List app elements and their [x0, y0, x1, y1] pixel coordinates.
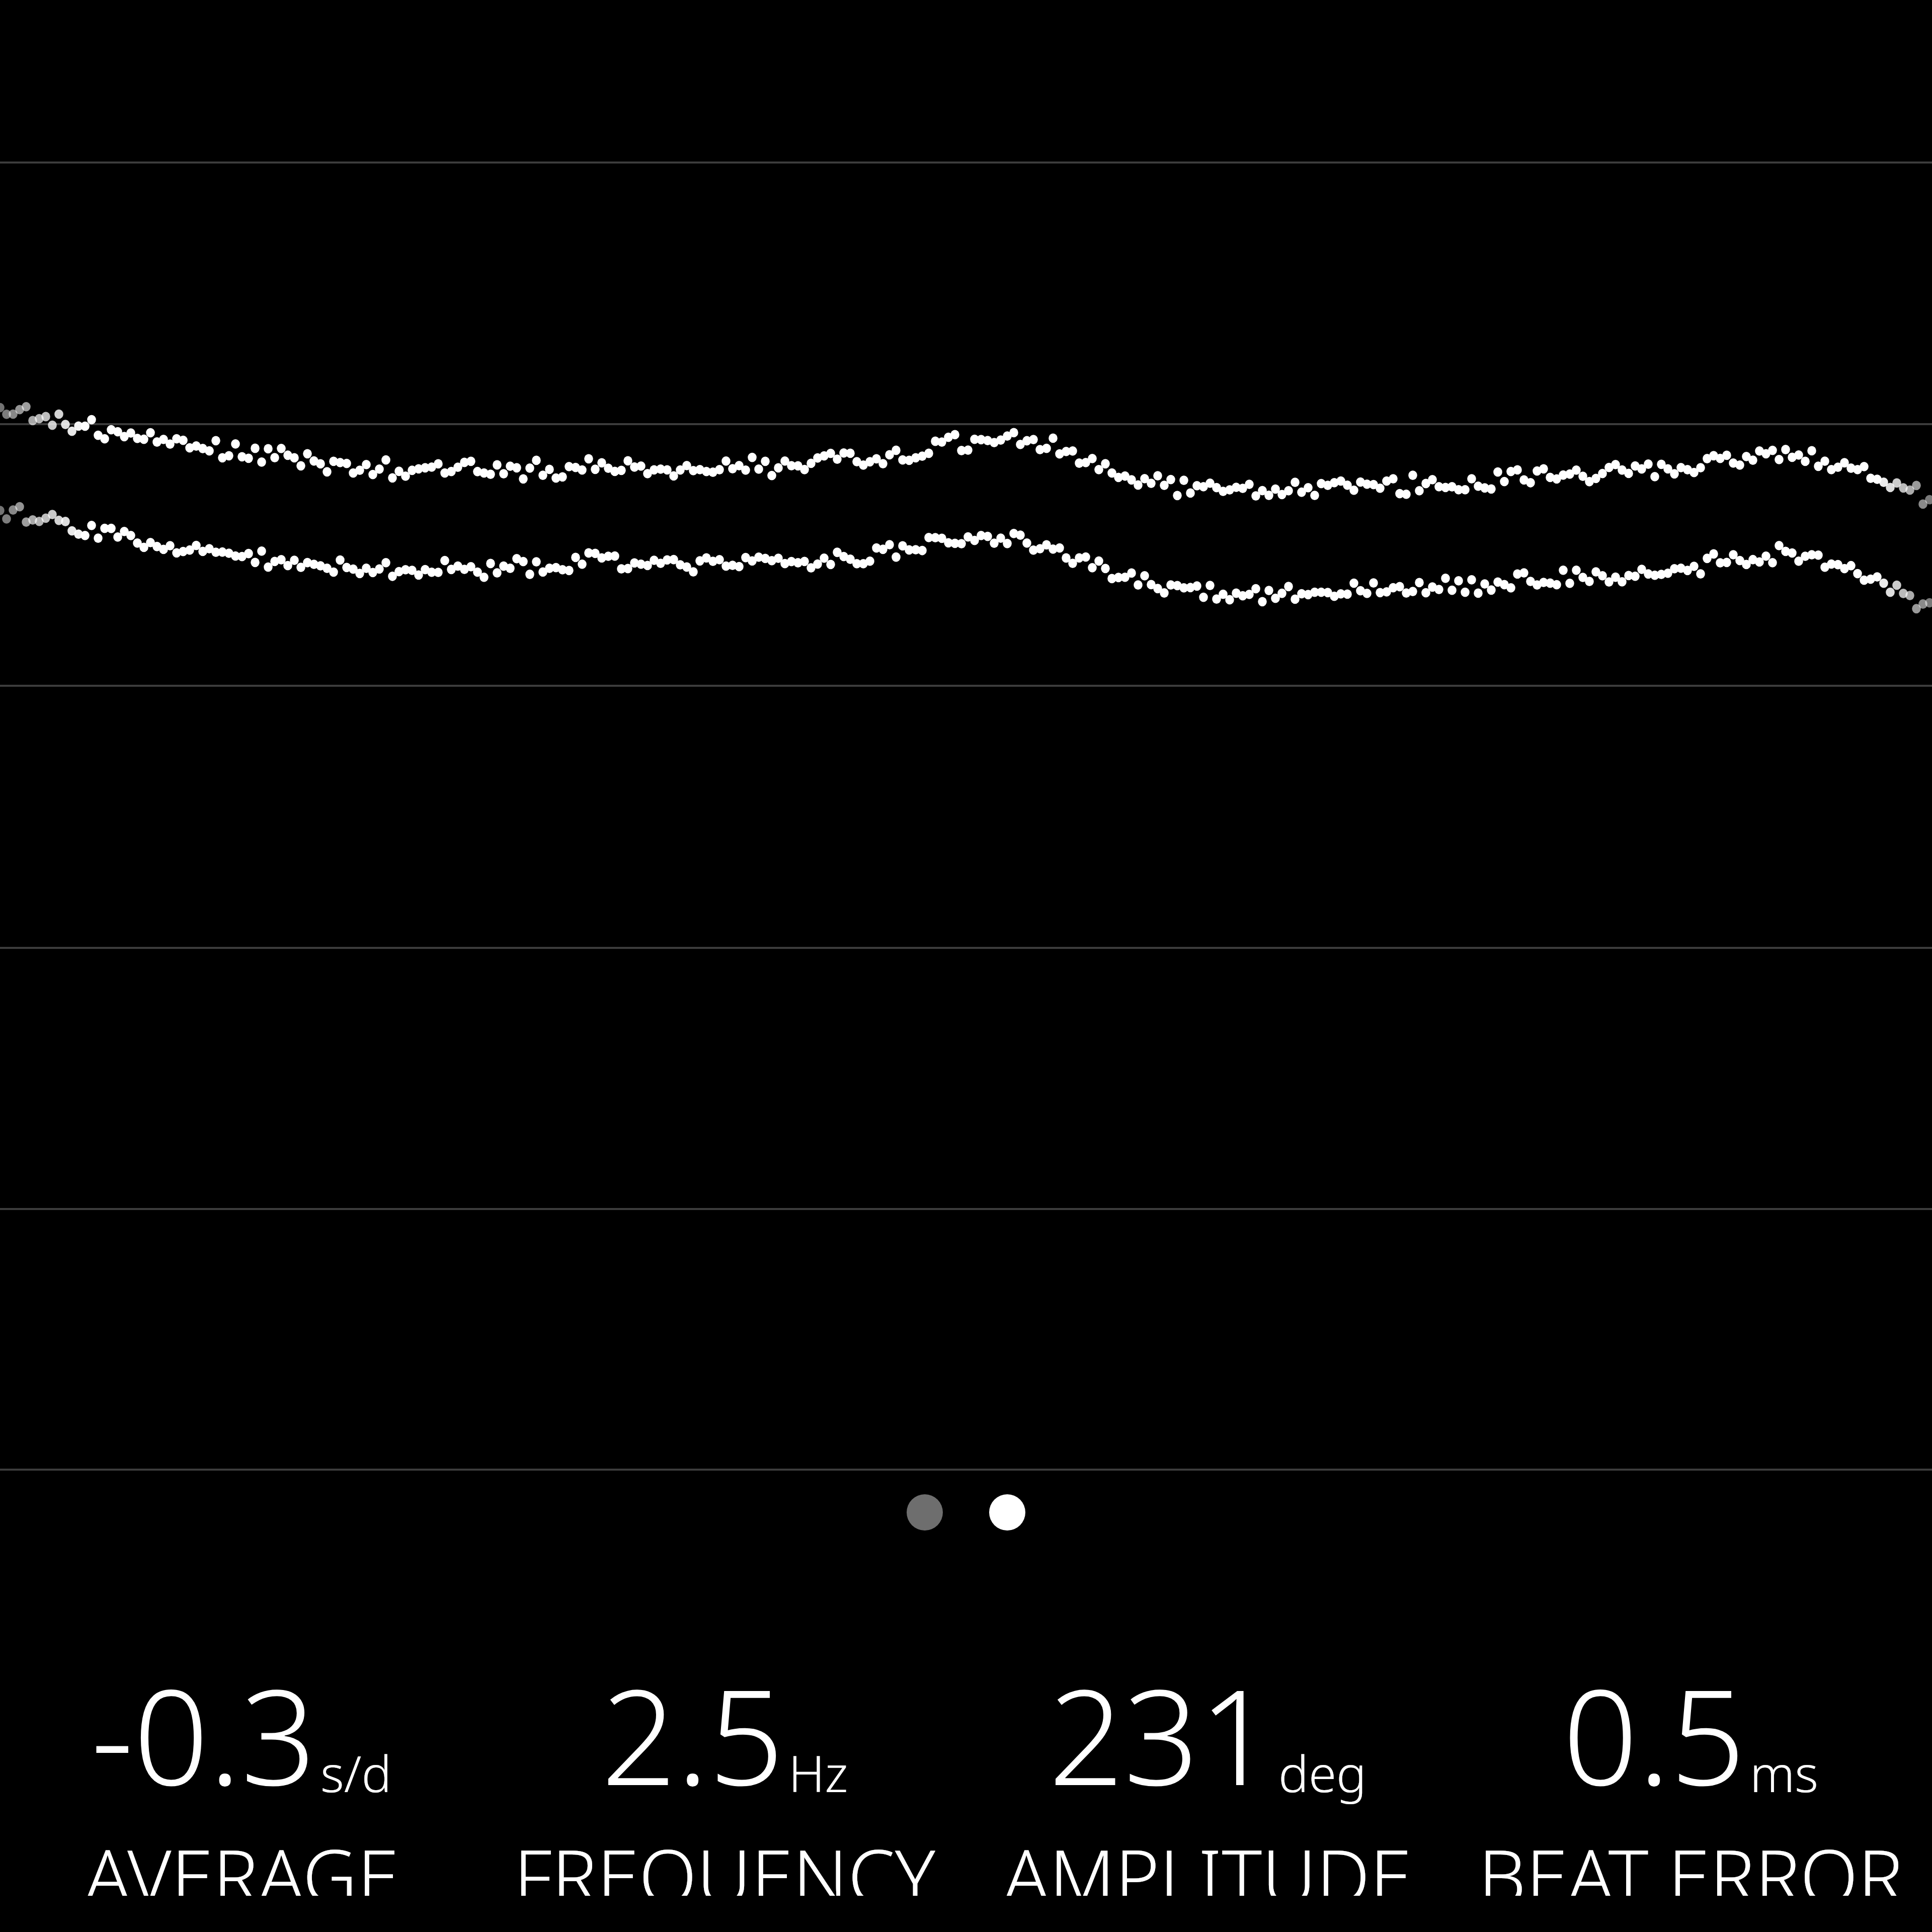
staticText: deg	[1278, 1738, 1366, 1807]
staticText: ms	[1750, 1738, 1819, 1807]
staticText: BEAT ERROR	[1478, 1824, 1903, 1896]
button[interactable]: 231	[966, 1644, 1449, 1896]
button[interactable]: 2.5	[483, 1644, 966, 1896]
staticText: 231	[1049, 1644, 1274, 1824]
staticText: -0.3	[91, 1644, 316, 1824]
staticText: 2.5	[601, 1644, 784, 1824]
button[interactable]: 0.5	[1449, 1644, 1932, 1896]
staticText: AVERAGE	[85, 1824, 399, 1896]
button[interactable]: -0.3	[0, 1644, 483, 1896]
button[interactable]: Page 1	[907, 1494, 943, 1531]
staticText: Hz	[788, 1738, 848, 1807]
staticText: AMPLITUDE	[1003, 1824, 1412, 1896]
button[interactable]: Rate trace graph	[0, 0, 1932, 1932]
staticText: 0.5	[1563, 1644, 1746, 1824]
button[interactable]: Page 2, selected	[989, 1494, 1025, 1531]
staticText: FREQUENCY	[514, 1824, 935, 1896]
staticText: s/d	[320, 1738, 392, 1807]
